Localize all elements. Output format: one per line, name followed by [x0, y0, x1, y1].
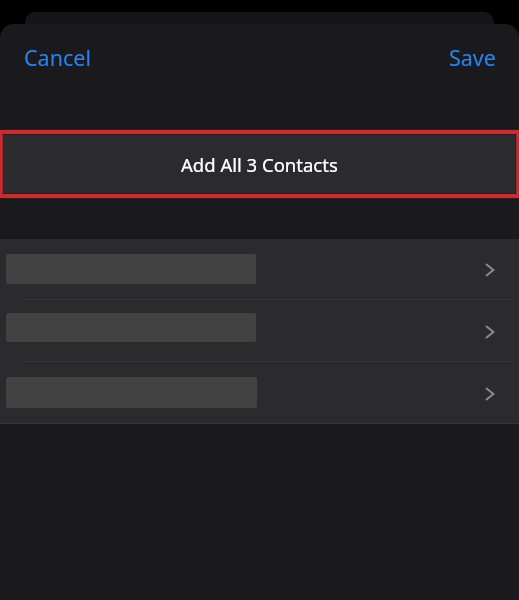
staticText: Save [449, 43, 496, 72]
other: Open contact [477, 381, 503, 407]
button[interactable]: Open contact [0, 300, 519, 361]
button[interactable]: Open contact [0, 362, 519, 423]
button[interactable]: Add All 3 Contacts [0, 135, 519, 193]
button[interactable]: Cancel [8, 35, 107, 80]
other: Open contact [477, 319, 503, 345]
other: Open contact [477, 257, 503, 283]
button[interactable]: Save [433, 35, 512, 80]
button[interactable]: Open contact [0, 239, 519, 299]
staticText: Add All 3 Contacts [181, 152, 338, 177]
staticText: Cancel [24, 43, 91, 72]
